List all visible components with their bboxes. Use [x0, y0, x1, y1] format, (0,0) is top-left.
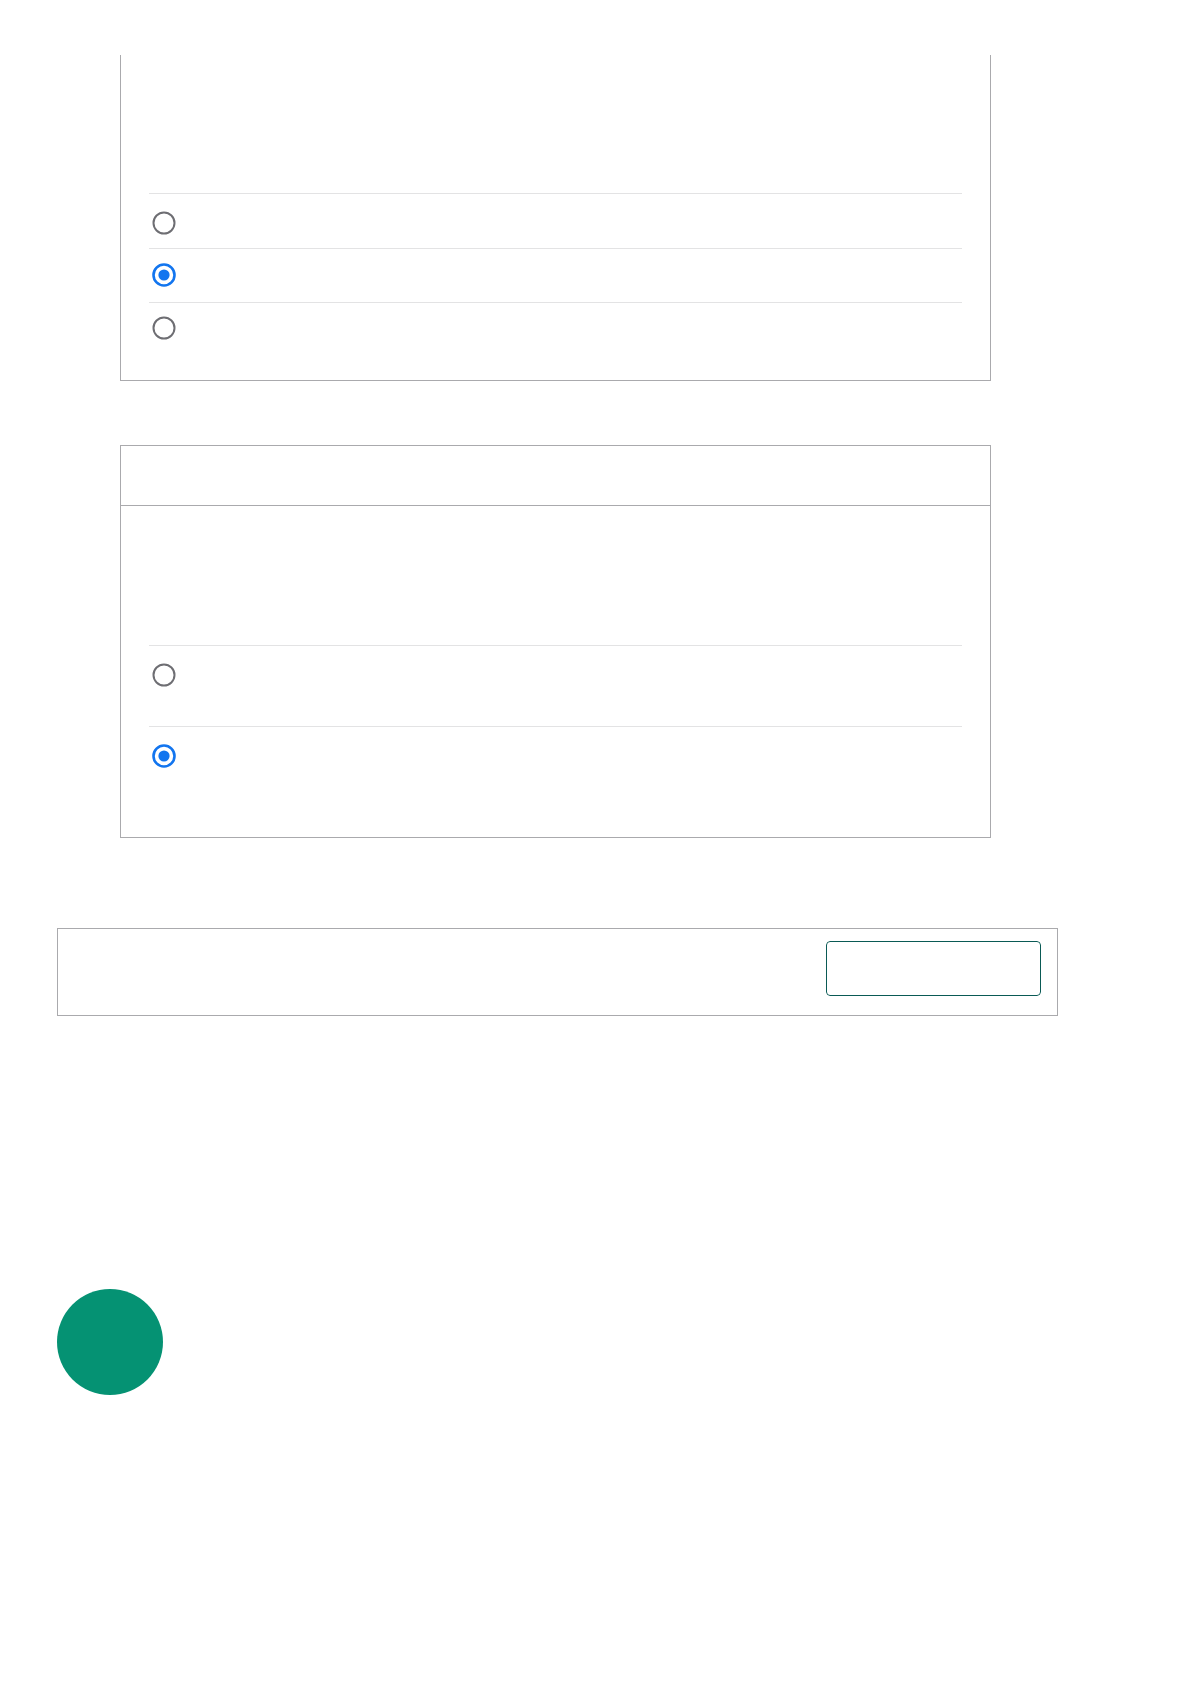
- button[interactable]: Option 3: [140, 304, 188, 352]
- button[interactable]: Choice B (selected): [140, 732, 188, 780]
- button[interactable]: Option 2 (selected): [140, 251, 188, 299]
- button[interactable]: Confirm: [826, 941, 1041, 996]
- button[interactable]: Option 3: [121, 303, 990, 357]
- button[interactable]: Add: [57, 1289, 163, 1395]
- button[interactable]: Option 2 (selected): [121, 249, 990, 302]
- button[interactable]: Option 1: [140, 199, 188, 247]
- button[interactable]: Choice A: [140, 651, 188, 699]
- button[interactable]: Choice B (selected): [121, 727, 990, 807]
- button[interactable]: Option 1: [121, 194, 990, 248]
- button[interactable]: Choice A: [121, 646, 990, 726]
